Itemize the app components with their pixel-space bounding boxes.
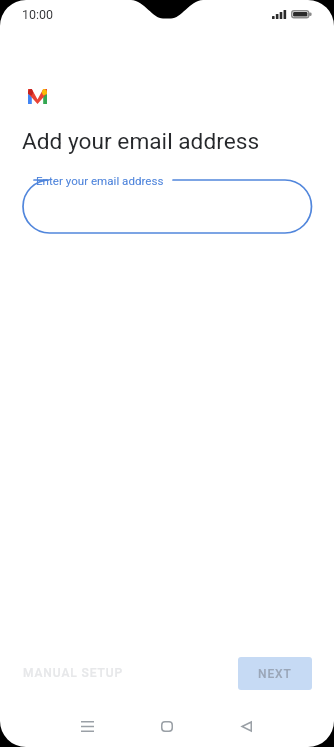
staticText: Enter your email address	[36, 174, 164, 188]
button[interactable]: Back	[222, 702, 270, 747]
staticText: 10:00	[22, 7, 54, 22]
staticText: Add your email address	[22, 128, 260, 155]
button[interactable]: MANUAL SETUP	[0, 658, 131, 688]
staticText: NEXT	[258, 667, 292, 681]
button[interactable]: Recent apps	[63, 702, 111, 747]
button[interactable]: Home	[143, 702, 191, 747]
button[interactable]: NEXT	[238, 657, 312, 690]
